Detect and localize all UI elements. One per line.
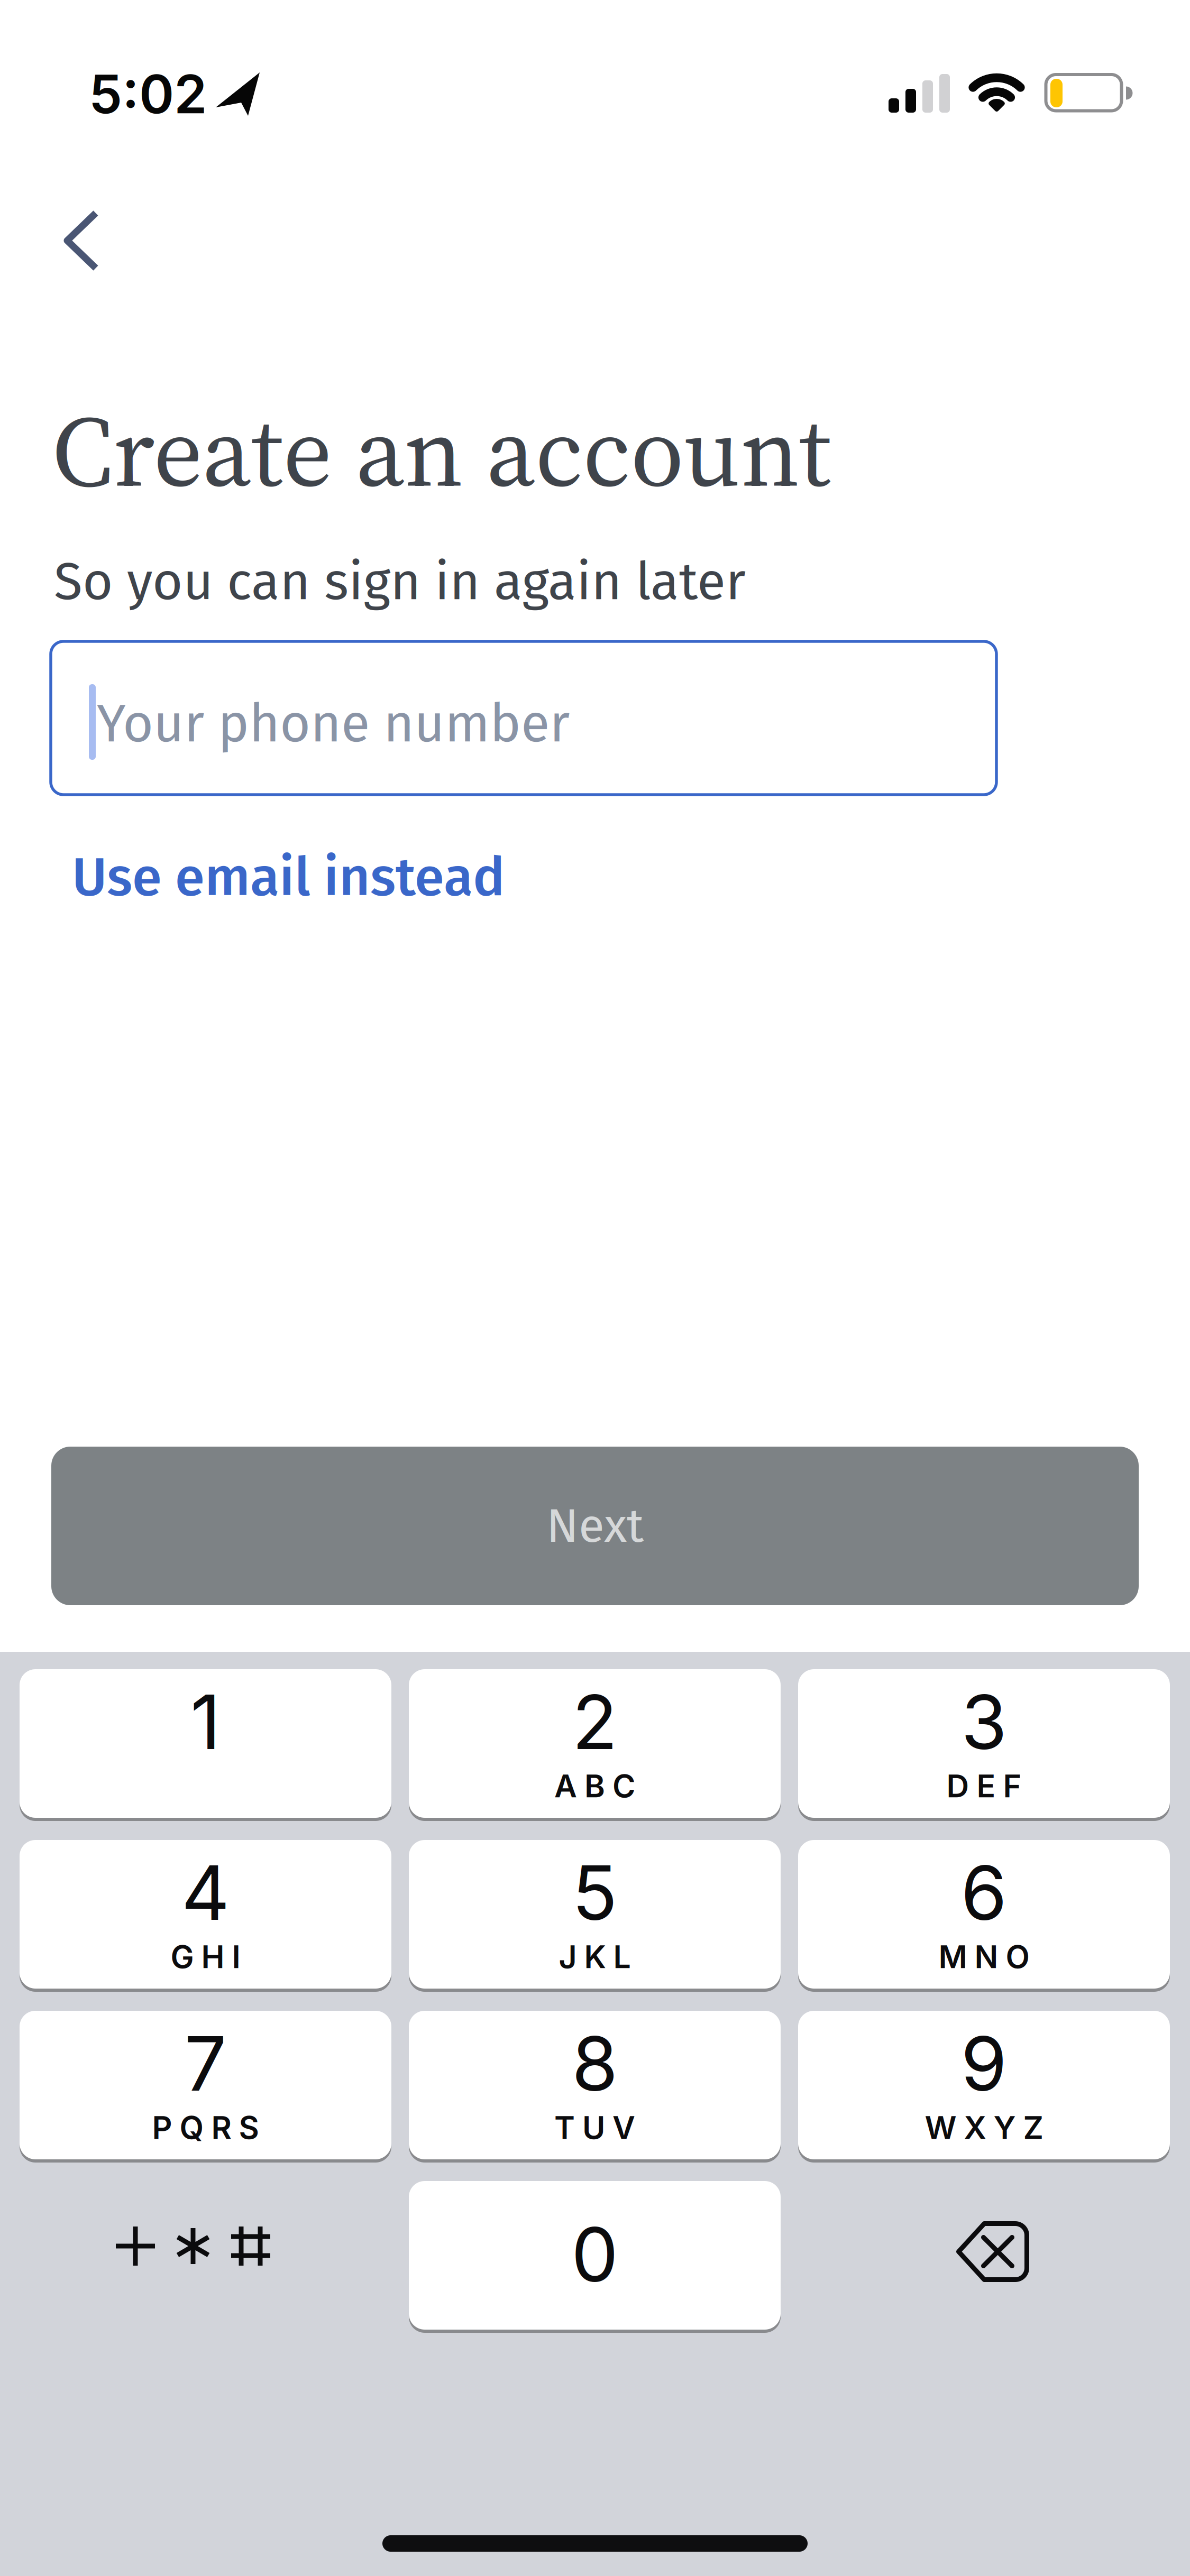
staticText: 8 (572, 2018, 618, 2109)
button[interactable]: 1 (20, 1669, 391, 1821)
staticText: TUV (554, 2109, 635, 2146)
button[interactable]: 5 (409, 1840, 781, 1992)
button[interactable]: Your phone number (51, 641, 996, 795)
staticText: Next (546, 1498, 644, 1554)
button[interactable]: 0 (409, 2181, 781, 2333)
button[interactable]: Back (42, 201, 127, 280)
button[interactable]: 8 (409, 2011, 781, 2163)
staticText: 7 (184, 2018, 227, 2109)
button[interactable]: Use email instead (72, 845, 505, 909)
button[interactable]: 4 (20, 1840, 391, 1992)
staticText: WXYZ (925, 2109, 1043, 2146)
staticText: Create an account (52, 382, 831, 519)
staticText: 3 (961, 1677, 1007, 1767)
staticText: 1 (190, 1677, 221, 1767)
staticText: DEF (946, 1767, 1022, 1805)
button[interactable]: 9 (798, 2011, 1170, 2163)
staticText: MNO (939, 1938, 1029, 1976)
staticText: 9 (961, 2018, 1007, 2109)
button[interactable]: 6 (798, 1840, 1170, 1992)
staticText: 6 (961, 1847, 1007, 1938)
button[interactable]: Next (51, 1447, 1139, 1605)
staticText: PQRS (152, 2109, 259, 2146)
staticText: GHI (171, 1938, 240, 1976)
staticText: So you can sign in again later (54, 550, 746, 613)
button[interactable]: Delete (798, 2181, 1170, 2330)
staticText: 5:02 (89, 62, 207, 126)
button[interactable]: 7 (20, 2011, 391, 2163)
staticText: Use email instead (72, 845, 505, 909)
staticText: 4 (181, 1847, 230, 1938)
staticText: Your phone number (97, 692, 570, 755)
button[interactable]: 3 (798, 1669, 1170, 1821)
staticText: ABC (554, 1767, 635, 1805)
staticText: JKL (559, 1938, 631, 1976)
staticText: 0 (571, 2209, 618, 2299)
button[interactable]: 2 (409, 1669, 781, 1821)
staticText: 5 (572, 1847, 617, 1938)
staticText: 2 (572, 1677, 617, 1767)
button[interactable]: Plus star hash (20, 2181, 391, 2330)
